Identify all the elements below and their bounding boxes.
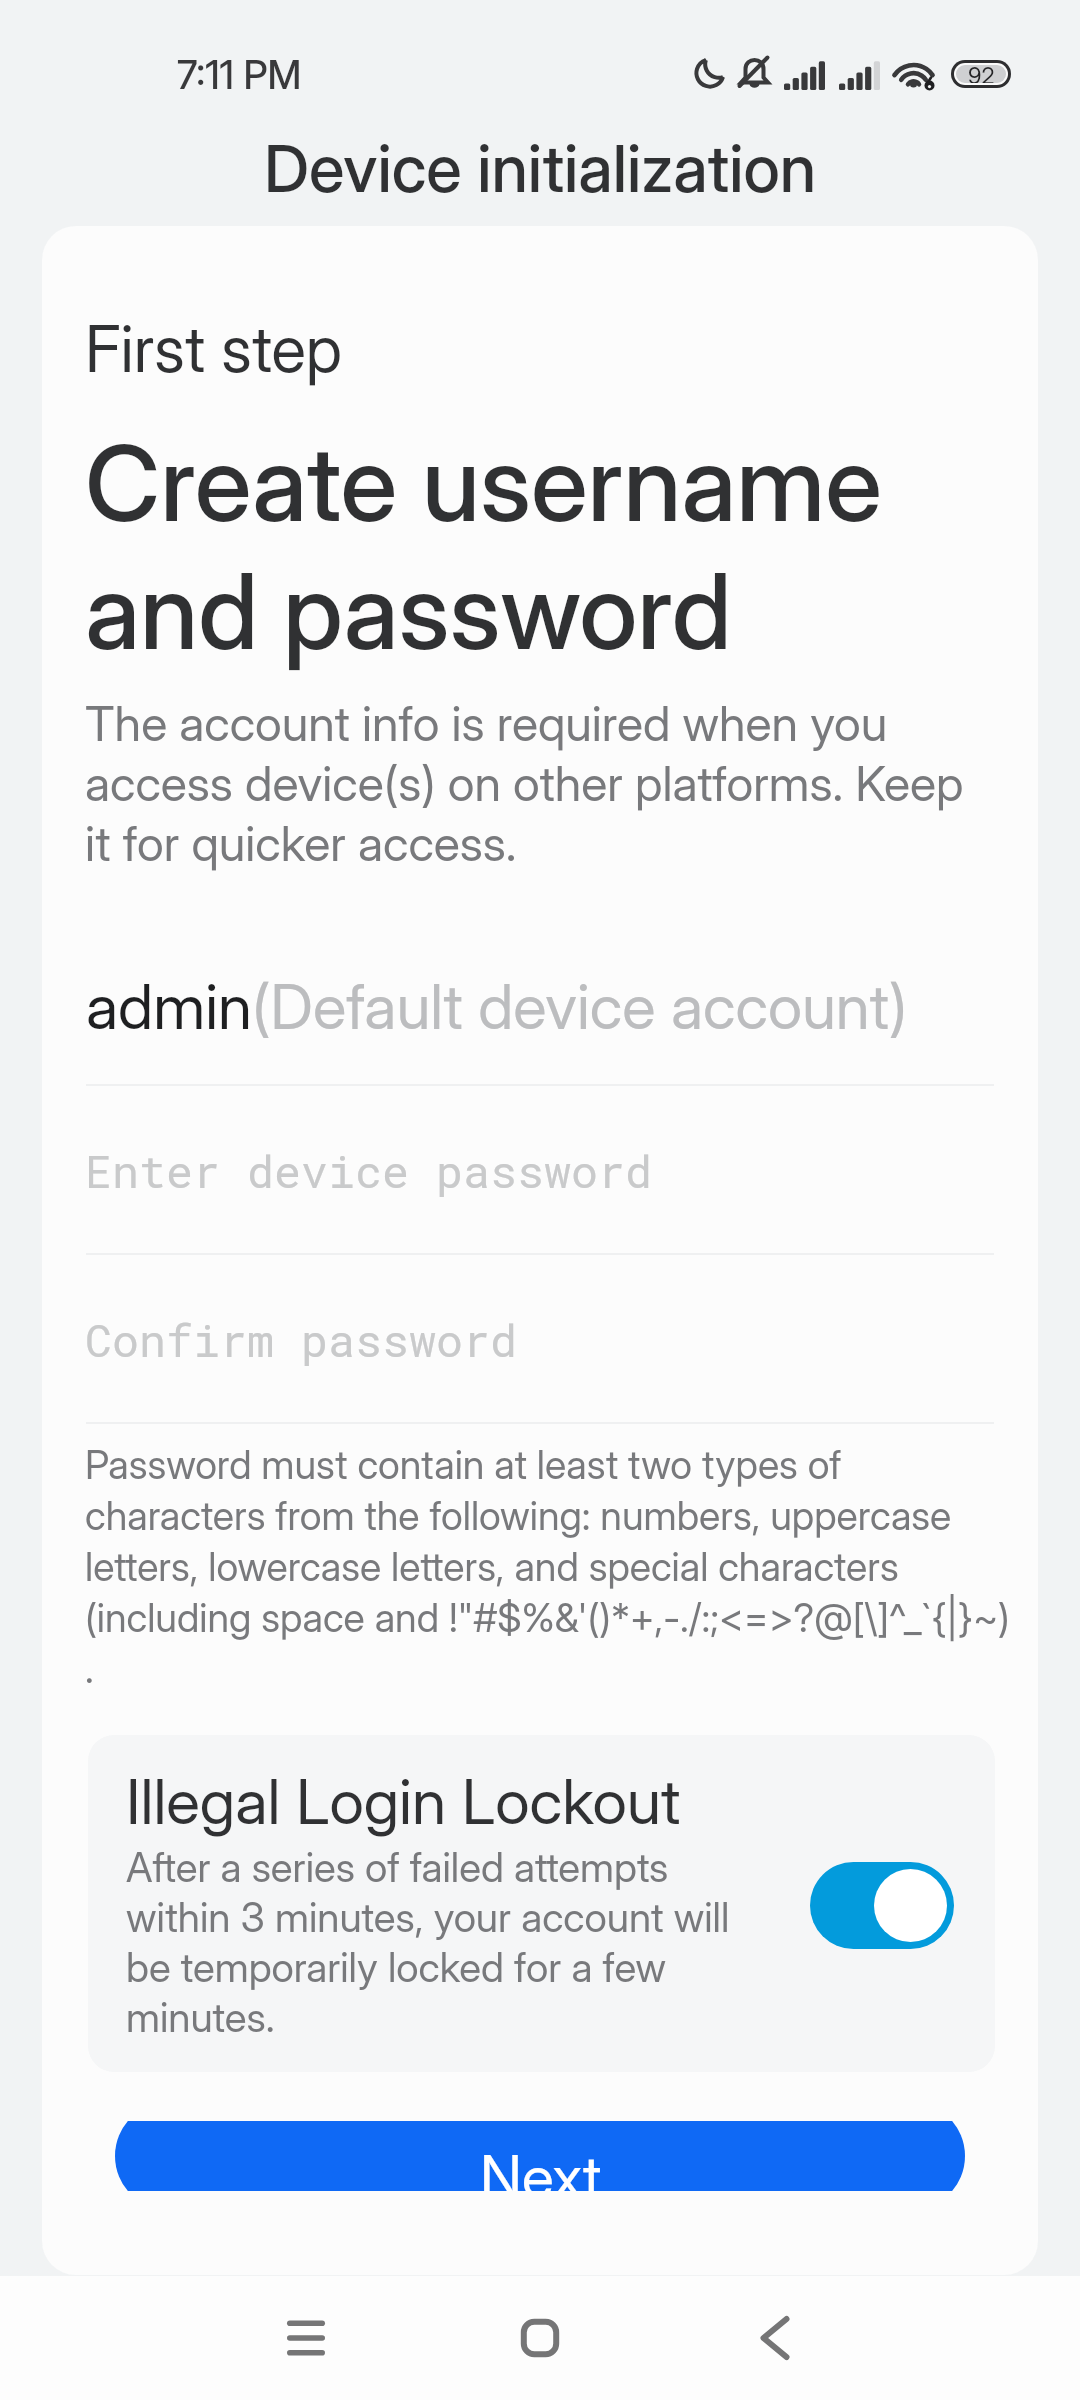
- staticText: The account info is required when you ac…: [85, 693, 997, 873]
- staticText: 92: [968, 65, 995, 83]
- staticText: First step: [85, 314, 342, 386]
- button[interactable]: Recent apps: [246, 2276, 366, 2400]
- staticText: After a series of failed attempts within…: [126, 1842, 762, 2042]
- button[interactable]: Next: [115, 2121, 965, 2191]
- staticText: Confirm password: [85, 1313, 518, 1369]
- staticText: Device initialization: [264, 139, 817, 205]
- button[interactable]: Home: [480, 2276, 600, 2400]
- staticText: Create username and password: [85, 419, 1000, 675]
- staticText: Illegal Login Lockout: [126, 1768, 681, 1838]
- staticText: Enter device password: [85, 1144, 653, 1200]
- staticText: Next: [480, 2144, 602, 2191]
- button[interactable]: Back: [715, 2276, 835, 2400]
- staticText: 7:11 PM: [177, 51, 302, 99]
- staticText: Password must contain at least two types…: [85, 1438, 1020, 1693]
- button[interactable]: Illegal Login Lockout: [810, 1862, 954, 1949]
- staticText: admin(Default device account): [86, 972, 908, 1043]
